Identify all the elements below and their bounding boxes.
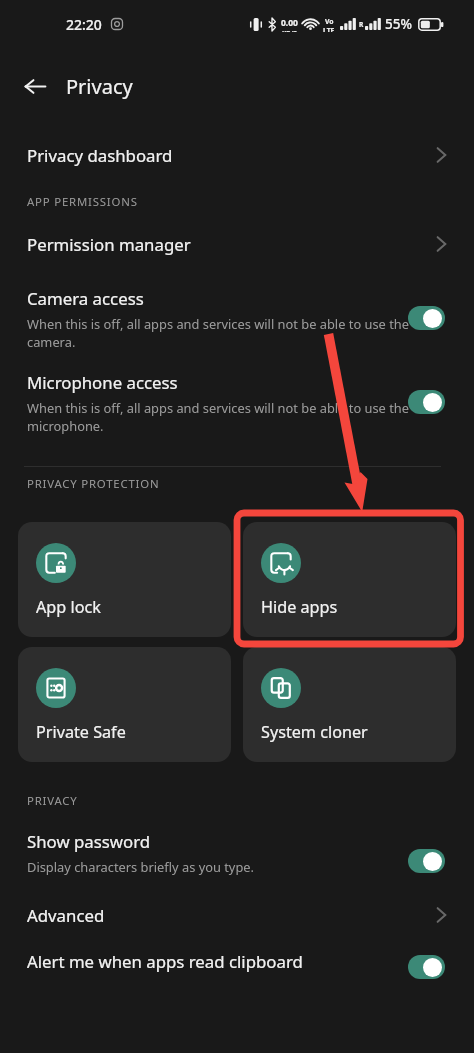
button[interactable]: Privacy dashboard [0,137,474,173]
staticText: Show password [27,830,151,853]
staticText: PRIVACY PROTECTION [27,476,160,492]
staticText: When this is off, all apps and services … [27,399,409,435]
button[interactable]: System cloner [243,647,456,762]
button[interactable]: Advanced [0,897,474,933]
staticText: PRIVACY [27,793,78,809]
staticText: Camera access [27,287,144,310]
button[interactable]: Toggle [408,306,445,330]
staticText: Advanced [27,904,105,927]
staticText: Vo [325,17,334,26]
staticText: System cloner [261,721,368,743]
staticText: When this is off, all apps and services … [27,315,409,351]
staticText: Hide apps [261,596,338,618]
staticText: Display characters briefly as you type. [27,858,255,876]
button[interactable]: Alert me when apps read clipboard [0,950,474,974]
staticText: Alert me when apps read clipboard [27,950,303,973]
button[interactable]: Toggle [408,390,445,414]
staticText: LTE [323,26,335,32]
button[interactable]: Toggle [408,955,445,979]
button[interactable]: Permission manager [0,226,474,262]
button[interactable]: Back [18,69,52,103]
staticText: Privacy [66,73,133,100]
staticText: 22:20 [66,15,102,34]
staticText: Privacy dashboard [27,144,173,167]
staticText: Permission manager [27,233,191,256]
button[interactable]: Hide apps [243,522,456,637]
staticText: 55% [385,15,412,33]
staticText: Private Safe [36,721,126,743]
button[interactable]: Toggle [408,849,445,873]
staticText: R [359,20,364,29]
button[interactable]: Show password [0,830,474,876]
staticText: APP PERMISSIONS [27,194,138,210]
staticText: 0.00 [281,17,298,29]
staticText: App lock [36,596,101,618]
button[interactable]: Private Safe [18,647,231,762]
button[interactable]: Microphone access [0,371,474,435]
staticText: Microphone access [27,371,178,394]
button[interactable]: Camera access [0,287,474,351]
staticText: KB/S [282,29,297,32]
button[interactable]: App lock [18,522,231,637]
